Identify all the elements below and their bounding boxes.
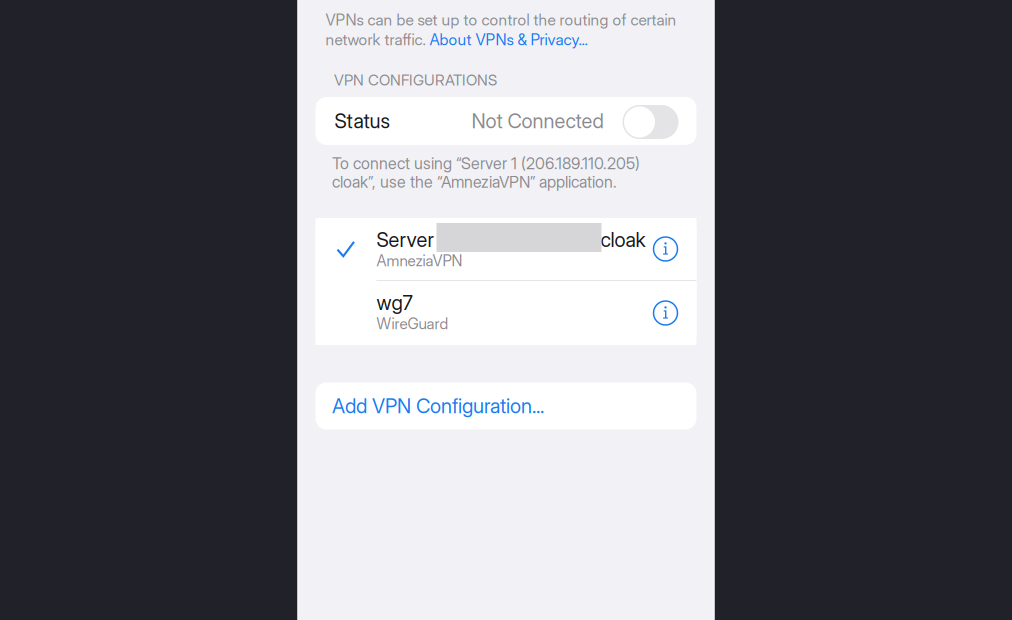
staticText: Server 1 (206.189.110.205) cloak [376,227,645,252]
staticText: Add VPN Configuration... [332,394,544,418]
staticText: cloak”, use the “AmneziaVPN” application… [332,172,617,192]
staticText: To connect using “Server 1 (206.189.110.… [332,154,640,173]
staticText: About VPNs & Privacy... [429,30,587,49]
button[interactable]: wg7 [315,281,696,345]
staticText: VPN CONFIGURATIONS [334,71,497,89]
staticText: AmneziaVPN [376,251,462,270]
staticText: WireGuard [376,314,448,333]
staticText: Not Connected [471,109,603,133]
button[interactable]: Add VPN Configuration... [315,382,696,429]
button[interactable]: Configuration details [643,217,687,280]
button[interactable]: About VPNs & Privacy... [429,30,587,49]
staticText: Status [334,109,389,133]
staticText: VPNs can be set up to control the routin… [325,10,676,29]
button[interactable]: VPN status [622,105,678,139]
button[interactable]: Configuration details [643,281,687,344]
staticText: network traffic. [325,30,429,49]
button[interactable]: Server 1 (206.189.110.205) cloak [315,218,696,280]
staticText: wg7 [376,290,412,315]
